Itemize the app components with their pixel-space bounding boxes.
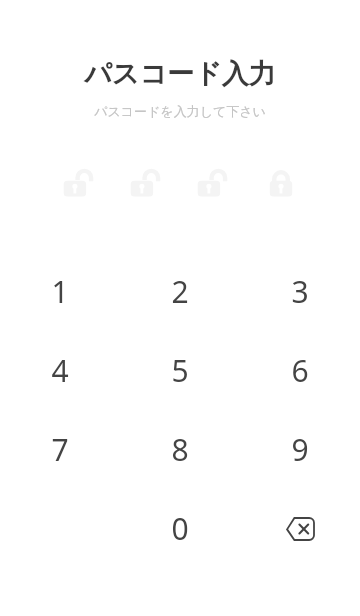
button[interactable]: 8 bbox=[120, 410, 240, 489]
button[interactable]: 9 bbox=[240, 410, 360, 489]
staticText: パスコード入力 bbox=[84, 57, 276, 91]
button[interactable]: 2 bbox=[120, 252, 240, 331]
button[interactable]: 6 bbox=[240, 331, 360, 410]
staticText: 9 bbox=[291, 429, 309, 470]
button[interactable]: 1 bbox=[0, 252, 120, 331]
staticText: パスコードを入力して下さい bbox=[94, 103, 266, 119]
staticText: 7 bbox=[51, 429, 69, 470]
staticText: 6 bbox=[291, 350, 309, 391]
button[interactable]: Backspace bbox=[240, 489, 360, 568]
staticText: 8 bbox=[171, 429, 189, 470]
staticText: 2 bbox=[171, 271, 189, 312]
button[interactable]: 0 bbox=[120, 489, 240, 568]
button[interactable]: 4 bbox=[0, 331, 120, 410]
staticText: 0 bbox=[171, 508, 189, 549]
staticText: 3 bbox=[291, 271, 309, 312]
button[interactable]: 7 bbox=[0, 410, 120, 489]
button[interactable]: 5 bbox=[120, 331, 240, 410]
staticText: 5 bbox=[171, 350, 189, 391]
button[interactable]: 3 bbox=[240, 252, 360, 331]
staticText: 4 bbox=[51, 350, 69, 391]
staticText: 1 bbox=[51, 271, 69, 312]
